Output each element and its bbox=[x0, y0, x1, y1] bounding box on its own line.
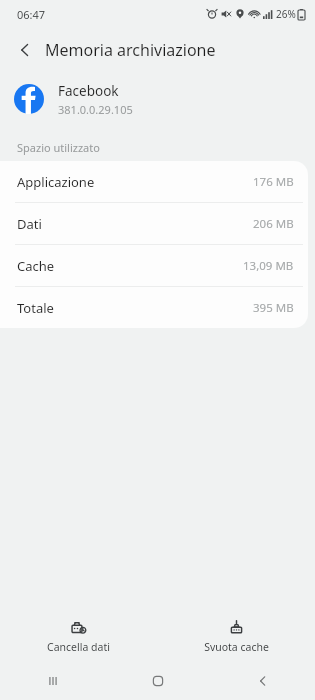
button[interactable]: Applicazione bbox=[0, 161, 308, 202]
button[interactable]: Dati bbox=[0, 203, 308, 244]
staticText: Dati bbox=[17, 215, 42, 233]
staticText: 206 MB bbox=[253, 216, 294, 232]
staticText: Memoria archiviazione bbox=[45, 39, 216, 61]
staticText: 395 MB bbox=[253, 300, 294, 316]
button[interactable]: Cancella dati bbox=[0, 610, 157, 662]
button[interactable]: Indietro bbox=[8, 33, 42, 67]
staticText: Applicazione bbox=[17, 173, 95, 191]
staticText: Spazio utilizzato bbox=[17, 140, 100, 155]
button[interactable]: Recenti bbox=[0, 662, 105, 700]
staticText: Svuota cache bbox=[204, 640, 269, 654]
staticText: 381.0.0.29.105 bbox=[58, 102, 133, 117]
button[interactable]: Indietro bbox=[210, 662, 315, 700]
staticText: Cache bbox=[17, 257, 55, 275]
button[interactable]: Cache bbox=[0, 245, 308, 286]
staticText: Facebook bbox=[58, 82, 119, 100]
button[interactable]: Home bbox=[105, 662, 210, 700]
staticText: 13,09 MB bbox=[243, 258, 294, 274]
staticText: Cancella dati bbox=[47, 640, 110, 654]
staticText: 06:47 bbox=[17, 7, 46, 22]
button[interactable]: Svuota cache bbox=[157, 610, 315, 662]
staticText: Totale bbox=[17, 299, 54, 317]
staticText: 176 MB bbox=[253, 174, 294, 190]
button[interactable]: Totale bbox=[0, 287, 308, 328]
staticText: 26% bbox=[276, 7, 296, 21]
